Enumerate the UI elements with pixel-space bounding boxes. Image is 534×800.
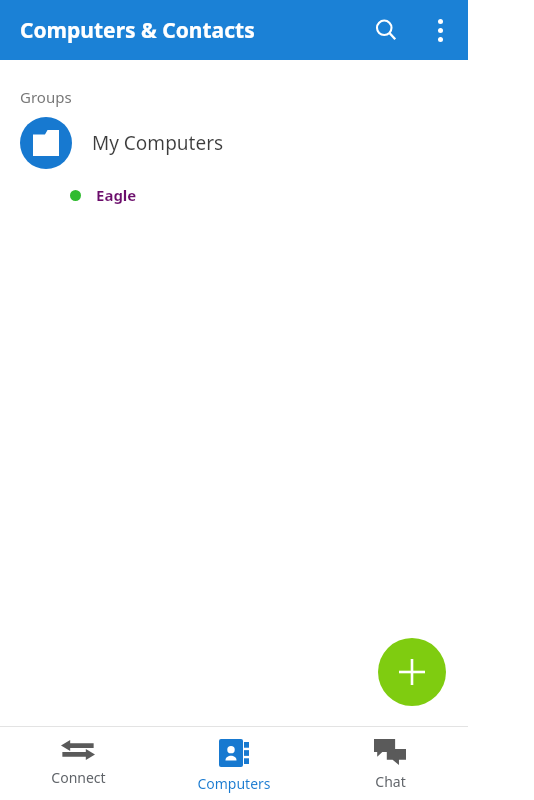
button[interactable]: Chat bbox=[312, 727, 468, 791]
staticText: Computers & Contacts bbox=[20, 16, 255, 45]
button[interactable]: Computers bbox=[156, 727, 312, 793]
staticText: Groups bbox=[20, 87, 72, 107]
button[interactable]: More options bbox=[416, 6, 464, 54]
button[interactable]: My Computers bbox=[0, 107, 468, 179]
staticText: Computers bbox=[197, 774, 271, 793]
staticText: Chat bbox=[375, 772, 406, 791]
staticText: My Computers bbox=[92, 130, 224, 156]
button[interactable]: Add bbox=[378, 638, 446, 706]
button[interactable]: Connect bbox=[0, 727, 156, 787]
staticText: Eagle bbox=[96, 185, 137, 205]
staticText: Connect bbox=[51, 768, 106, 787]
button[interactable]: Eagle bbox=[0, 179, 468, 211]
button[interactable]: Search bbox=[362, 6, 410, 54]
